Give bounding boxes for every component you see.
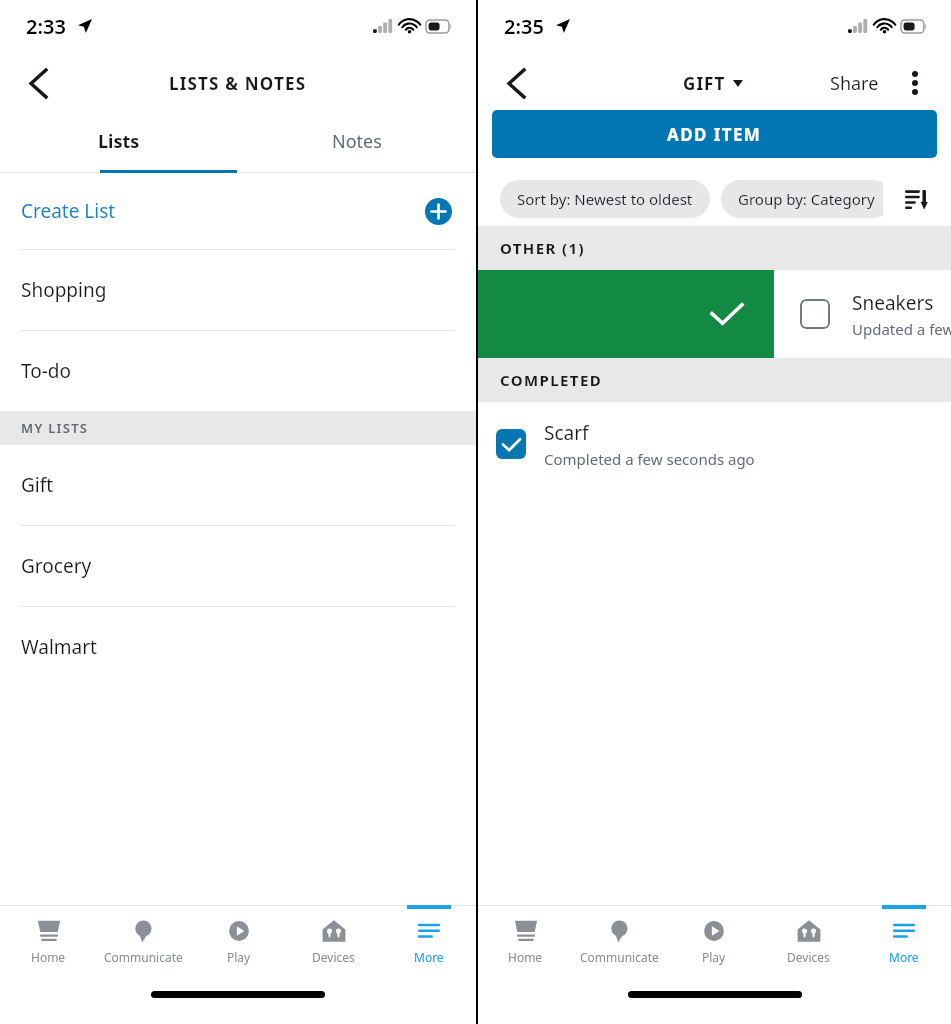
button[interactable]: ADD ITEM bbox=[492, 110, 937, 158]
button[interactable]: Sort bbox=[883, 172, 951, 226]
staticText: LISTS & NOTES bbox=[169, 72, 307, 95]
staticText: Communicate bbox=[104, 949, 183, 965]
staticText: Sneakers bbox=[852, 290, 934, 316]
staticText: Home bbox=[31, 949, 66, 965]
button[interactable]: Sort by: Newest to oldest bbox=[500, 180, 710, 218]
button[interactable]: Play bbox=[191, 906, 286, 976]
staticText: GIFT bbox=[683, 72, 726, 95]
button[interactable]: GIFT bbox=[683, 72, 743, 95]
button[interactable]: Back bbox=[492, 59, 540, 107]
button[interactable]: Home bbox=[478, 906, 572, 976]
button[interactable]: More bbox=[381, 906, 476, 976]
staticText: Walmart bbox=[21, 634, 97, 660]
button[interactable]: Back bbox=[14, 59, 62, 107]
staticText: Updated a few seconds ago bbox=[852, 319, 951, 339]
button[interactable]: Home bbox=[0, 906, 96, 976]
staticText: Shopping bbox=[21, 277, 107, 303]
staticText: 2:33 bbox=[26, 13, 66, 40]
button[interactable]: More options bbox=[895, 63, 935, 103]
staticText: To-do bbox=[21, 358, 72, 384]
staticText: Notes bbox=[332, 129, 382, 154]
button[interactable]: Sneakers bbox=[774, 270, 951, 358]
staticText: Play bbox=[702, 949, 726, 965]
button[interactable]: Notes bbox=[238, 110, 476, 173]
staticText: Group by: Category bbox=[738, 189, 875, 209]
staticText: 2:35 bbox=[504, 13, 544, 40]
button[interactable]: Devices bbox=[761, 906, 856, 976]
button[interactable]: Shopping bbox=[0, 250, 476, 330]
staticText: Create List bbox=[21, 198, 116, 224]
staticText: Gift bbox=[21, 472, 54, 498]
button[interactable]: Share bbox=[830, 71, 879, 96]
button[interactable]: To-do bbox=[0, 331, 476, 411]
staticText: MY LISTS bbox=[21, 419, 89, 437]
staticText: Scarf bbox=[544, 420, 589, 446]
staticText: Devices bbox=[787, 949, 830, 965]
button[interactable]: Devices bbox=[286, 906, 381, 976]
staticText: Share bbox=[830, 71, 879, 96]
staticText: Home bbox=[508, 949, 543, 965]
button[interactable]: Play bbox=[666, 906, 761, 976]
button[interactable]: Group by: Category bbox=[721, 180, 892, 218]
staticText: ADD ITEM bbox=[667, 123, 762, 146]
staticText: OTHER (1) bbox=[500, 238, 586, 258]
button[interactable]: Grocery bbox=[0, 526, 476, 606]
staticText: COMPLETED bbox=[500, 370, 603, 390]
button[interactable]: Complete item bbox=[478, 270, 774, 358]
button[interactable]: Communicate bbox=[96, 906, 191, 976]
button[interactable]: More bbox=[856, 906, 951, 976]
staticText: Communicate bbox=[580, 949, 659, 965]
staticText: Grocery bbox=[21, 553, 92, 579]
staticText: Completed a few seconds ago bbox=[544, 449, 755, 469]
button[interactable]: Gift bbox=[0, 445, 476, 525]
staticText: More bbox=[889, 949, 919, 965]
button[interactable]: Walmart bbox=[0, 607, 476, 687]
button[interactable]: Communicate bbox=[572, 906, 666, 976]
staticText: Sort by: Newest to oldest bbox=[517, 189, 693, 209]
staticText: Devices bbox=[312, 949, 355, 965]
button[interactable]: Lists bbox=[0, 110, 238, 173]
staticText: Play bbox=[227, 949, 251, 965]
button[interactable]: Create List bbox=[0, 173, 476, 249]
staticText: Lists bbox=[98, 129, 140, 154]
button[interactable]: Scarf bbox=[478, 402, 951, 486]
staticText: More bbox=[414, 949, 444, 965]
